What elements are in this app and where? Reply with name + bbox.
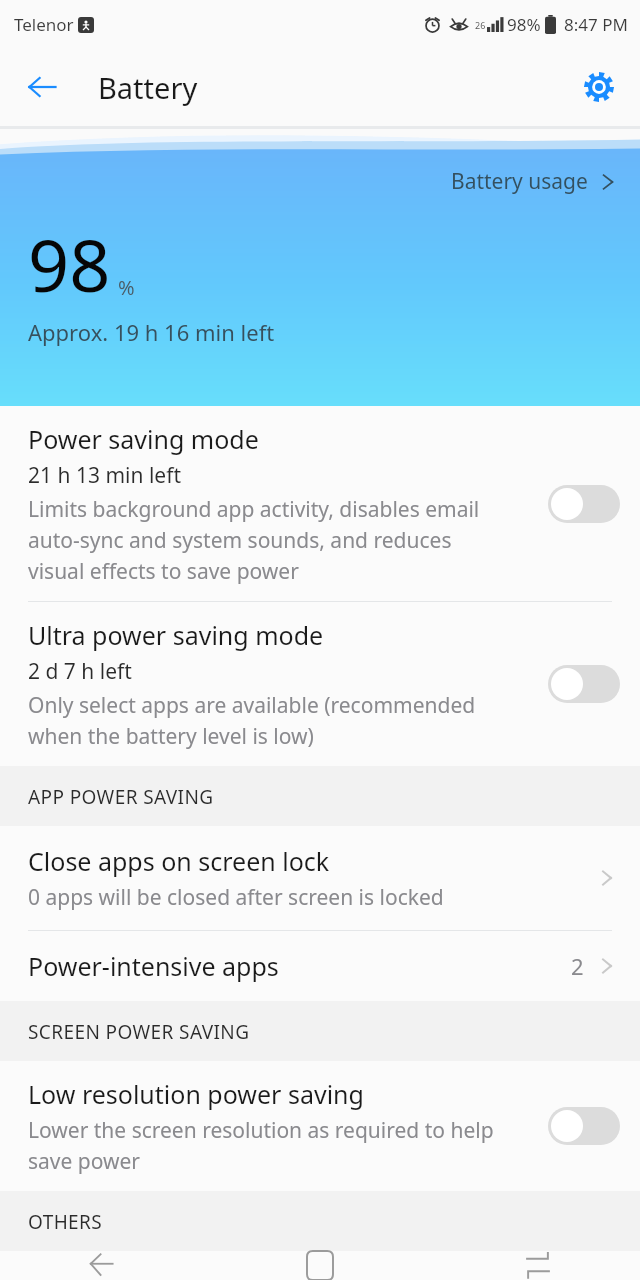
staticText: Low resolution power saving (28, 1077, 364, 1111)
button[interactable]: Battery usage (445, 163, 624, 200)
staticText: Close apps on screen lock (28, 844, 330, 878)
staticText: Only select apps are available (recommen… (28, 691, 476, 750)
staticText: 26 (475, 19, 486, 31)
staticText: 8:47 PM (564, 13, 628, 36)
staticText: % (118, 274, 135, 301)
staticText: Battery (98, 68, 198, 107)
button[interactable]: Ultra power saving mode (0, 602, 640, 766)
staticText: Power saving mode (28, 422, 259, 456)
staticText: 98 (28, 215, 111, 313)
staticText: Lower the screen resolution as required … (28, 1116, 494, 1175)
button[interactable]: Back (14, 59, 70, 115)
staticText: Ultra power saving mode (28, 618, 324, 652)
button[interactable]: Low resolution power saving (0, 1061, 640, 1191)
staticText: SCREEN POWER SAVING (28, 1019, 250, 1045)
button[interactable]: Back (70, 1251, 134, 1280)
staticText: APP POWER SAVING (28, 784, 214, 810)
staticText: 0 apps will be closed after screen is lo… (28, 883, 444, 912)
button[interactable]: Power-intensive apps (0, 931, 640, 1001)
staticText: Battery usage (451, 167, 588, 196)
staticText: Limits background app activity, disables… (28, 495, 480, 585)
button[interactable]: Close apps on screen lock (0, 826, 640, 930)
staticText: Power-intensive apps (28, 949, 279, 983)
button[interactable]: Toggle off (548, 1107, 620, 1145)
staticText: 2 (571, 951, 584, 981)
staticText: 2 d 7 h left (28, 657, 132, 686)
button[interactable]: Recents (506, 1251, 570, 1280)
staticText: 21 h 13 min left (28, 461, 181, 490)
button[interactable]: Settings (572, 60, 626, 114)
staticText: Approx. 19 h 16 min left (28, 317, 275, 347)
button[interactable]: Toggle off (548, 665, 620, 703)
button[interactable]: Toggle off (548, 485, 620, 523)
staticText: OTHERS (28, 1209, 103, 1235)
button[interactable]: Home (288, 1251, 352, 1280)
staticText: Telenor (14, 13, 74, 36)
staticText: 98% (507, 13, 541, 36)
button[interactable]: Power saving mode (0, 406, 640, 601)
